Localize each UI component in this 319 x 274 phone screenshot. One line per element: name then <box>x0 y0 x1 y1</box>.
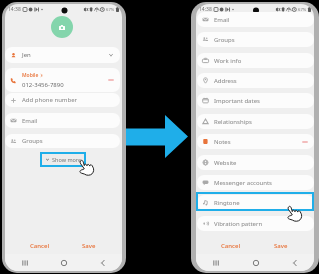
staticText: Address <box>214 77 237 85</box>
button[interactable]: Email <box>5 113 120 128</box>
button[interactable]: Notes <box>197 134 314 149</box>
staticText: Website <box>214 159 237 167</box>
button[interactable]: Mobile <box>5 68 120 92</box>
button[interactable]: Jen <box>5 47 120 63</box>
button[interactable]: Back <box>83 254 122 271</box>
staticText: Groups <box>214 36 235 44</box>
staticText: Messenger accounts <box>214 179 272 187</box>
button[interactable]: Add phone number <box>5 93 120 107</box>
button[interactable]: Ringtone <box>197 195 314 210</box>
staticText: Work info <box>214 57 242 65</box>
button[interactable]: Show more <box>42 154 84 165</box>
staticText: Relationships <box>214 118 252 126</box>
button[interactable]: Address <box>197 73 314 88</box>
button[interactable]: Website <box>197 155 314 170</box>
button[interactable]: Home <box>44 254 83 271</box>
button[interactable]: Work info <box>197 53 314 68</box>
staticText: Save <box>82 242 96 250</box>
button[interactable]: Home <box>236 254 275 271</box>
staticText: Ringtone <box>214 199 240 207</box>
button[interactable]: Groups <box>197 32 314 47</box>
button[interactable]: Cancel <box>5 237 74 254</box>
staticText: Important dates <box>214 97 260 105</box>
staticText: Show more <box>52 156 82 163</box>
staticText: 67% <box>106 7 115 13</box>
button[interactable]: Save <box>74 237 104 254</box>
staticText: Jen <box>22 51 31 59</box>
button[interactable]: Recents <box>5 254 44 271</box>
staticText: Email <box>22 117 38 125</box>
staticText: Save <box>274 242 288 250</box>
button[interactable]: Groups <box>5 134 120 148</box>
staticText: 14:38 <box>199 6 212 13</box>
button[interactable]: Vibration pattern <box>197 216 314 231</box>
staticText: Cancel <box>30 242 50 250</box>
staticText: Vibration pattern <box>214 220 263 228</box>
staticText: Email <box>214 16 230 24</box>
staticText: 14:38 <box>8 6 21 13</box>
button[interactable]: Change contact photo <box>51 16 73 38</box>
button[interactable]: Cancel <box>196 237 265 254</box>
staticText: Groups <box>22 137 43 145</box>
button[interactable]: Relationships <box>197 114 314 129</box>
staticText: 67% <box>298 7 307 13</box>
staticText: Cancel <box>221 242 241 250</box>
button[interactable]: Back <box>275 254 314 271</box>
button[interactable]: Save <box>265 237 296 254</box>
staticText: Add phone number <box>22 96 78 104</box>
staticText: 012-3456-7890 <box>22 81 64 89</box>
button[interactable]: Important dates <box>197 93 314 108</box>
button[interactable]: Messenger accounts <box>197 175 314 190</box>
staticText: Mobile <box>22 72 39 79</box>
button[interactable]: Email <box>197 12 314 27</box>
staticText: Notes <box>214 138 231 146</box>
button[interactable]: Recents <box>196 254 236 271</box>
